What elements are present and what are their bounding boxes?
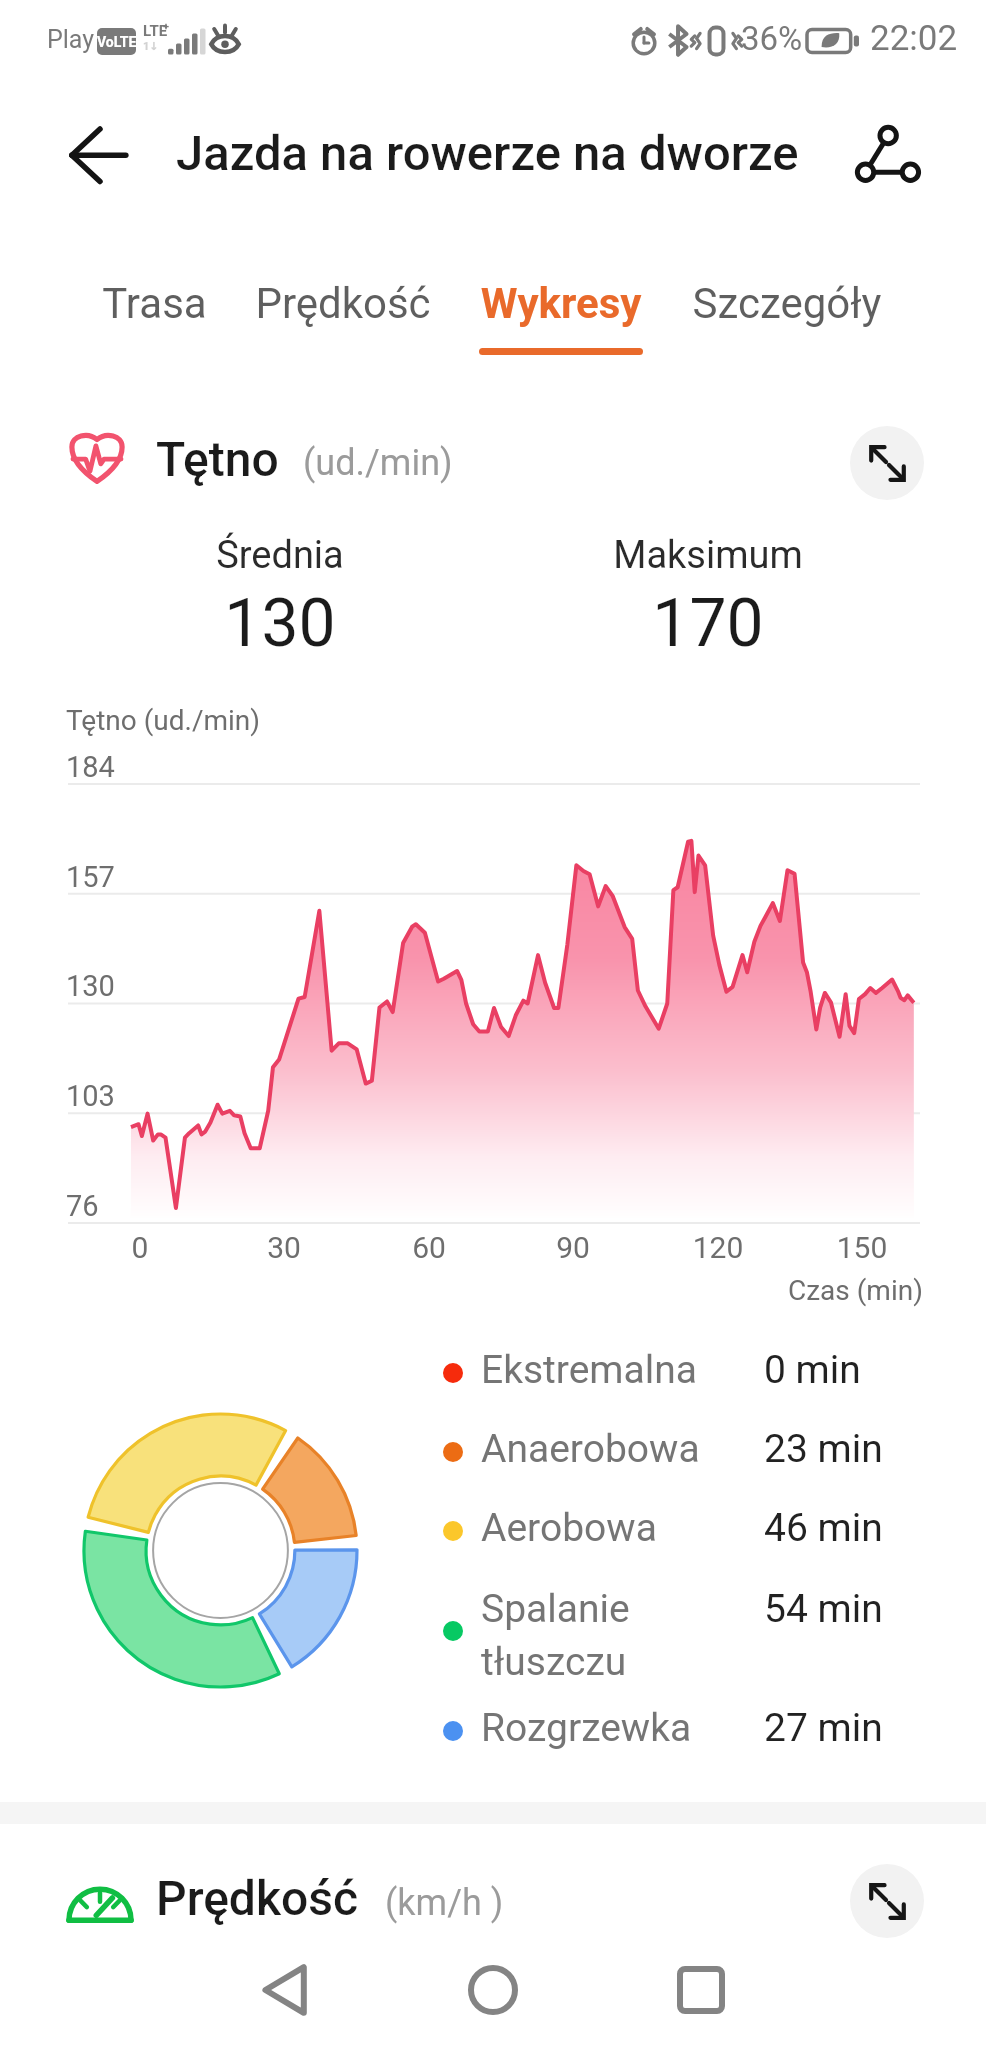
button[interactable]: Recent apps [661, 1950, 741, 2030]
staticText: Wykresy [455, 279, 667, 328]
staticText: Spalanie tłuszczu [481, 1586, 630, 1684]
staticText: 103 [66, 1079, 115, 1113]
staticText: + [163, 20, 169, 33]
button[interactable]: Share [848, 118, 926, 196]
button[interactable]: Wykresy [455, 266, 667, 362]
staticText: 130 [0, 585, 560, 662]
button[interactable]: Expand speed chart [850, 1864, 924, 1938]
staticText: LTE [143, 22, 168, 40]
staticText: 170 [428, 585, 986, 662]
button[interactable]: Expand heart rate chart [850, 426, 924, 500]
button[interactable]: Spalanie tłuszczu [440, 1591, 920, 1701]
button[interactable]: Aerobowa [440, 1491, 920, 1571]
staticText: 157 [66, 860, 115, 894]
staticText: 130 [66, 969, 115, 1003]
button[interactable]: Ekstremalna [440, 1333, 920, 1413]
staticText: Anaerobowa [481, 1426, 700, 1472]
staticText: Ekstremalna [481, 1347, 698, 1393]
staticText: Tętno (ud./min) [66, 704, 261, 737]
staticText: Rozgrzewka [481, 1705, 692, 1751]
staticText: Play [47, 25, 95, 54]
staticText: 1↓ [143, 40, 159, 53]
staticText: 120 [658, 1230, 778, 1265]
button[interactable]: Trasa [77, 266, 232, 362]
staticText: 27 min [764, 1705, 883, 1751]
staticText: 60 [369, 1230, 489, 1265]
staticText: Trasa [77, 279, 232, 328]
staticText: 184 [66, 750, 115, 784]
button[interactable]: Rozgrzewka [440, 1691, 920, 1771]
staticText: VoLTE [97, 34, 136, 50]
staticText: Maksimum [428, 533, 986, 578]
staticText: Prędkość [156, 1870, 358, 1926]
button[interactable]: Szczegóły [666, 266, 908, 362]
staticText: 22:02 [870, 18, 958, 59]
staticText: 54 min [764, 1586, 883, 1632]
staticText: 46 min [764, 1505, 883, 1551]
staticText: 76 [66, 1189, 99, 1223]
staticText: 90 [513, 1230, 633, 1265]
staticText: Czas (min) [788, 1274, 923, 1307]
button[interactable]: Back [62, 118, 138, 194]
staticText: 36% [741, 19, 803, 58]
staticText: Szczegóły [666, 279, 908, 328]
button[interactable]: Anaerobowa [440, 1412, 920, 1492]
staticText: Średnia [0, 533, 560, 578]
staticText: (km/h ) [385, 1882, 504, 1924]
button[interactable]: Back [245, 1950, 325, 2030]
staticText: Jazda na rowerze na dworze [176, 125, 799, 182]
button[interactable]: Home [453, 1950, 533, 2030]
staticText: 23 min [764, 1426, 883, 1472]
staticText: Aerobowa [481, 1505, 657, 1551]
staticText: Prędkość [231, 279, 455, 328]
button[interactable]: Prędkość [231, 266, 455, 362]
staticText: 0 min [764, 1347, 861, 1393]
staticText: (ud./min) [303, 442, 453, 484]
staticText: 30 [224, 1230, 344, 1265]
staticText: 150 [802, 1230, 922, 1265]
staticText: 0 [80, 1230, 200, 1265]
staticText: Tętno [156, 431, 279, 487]
